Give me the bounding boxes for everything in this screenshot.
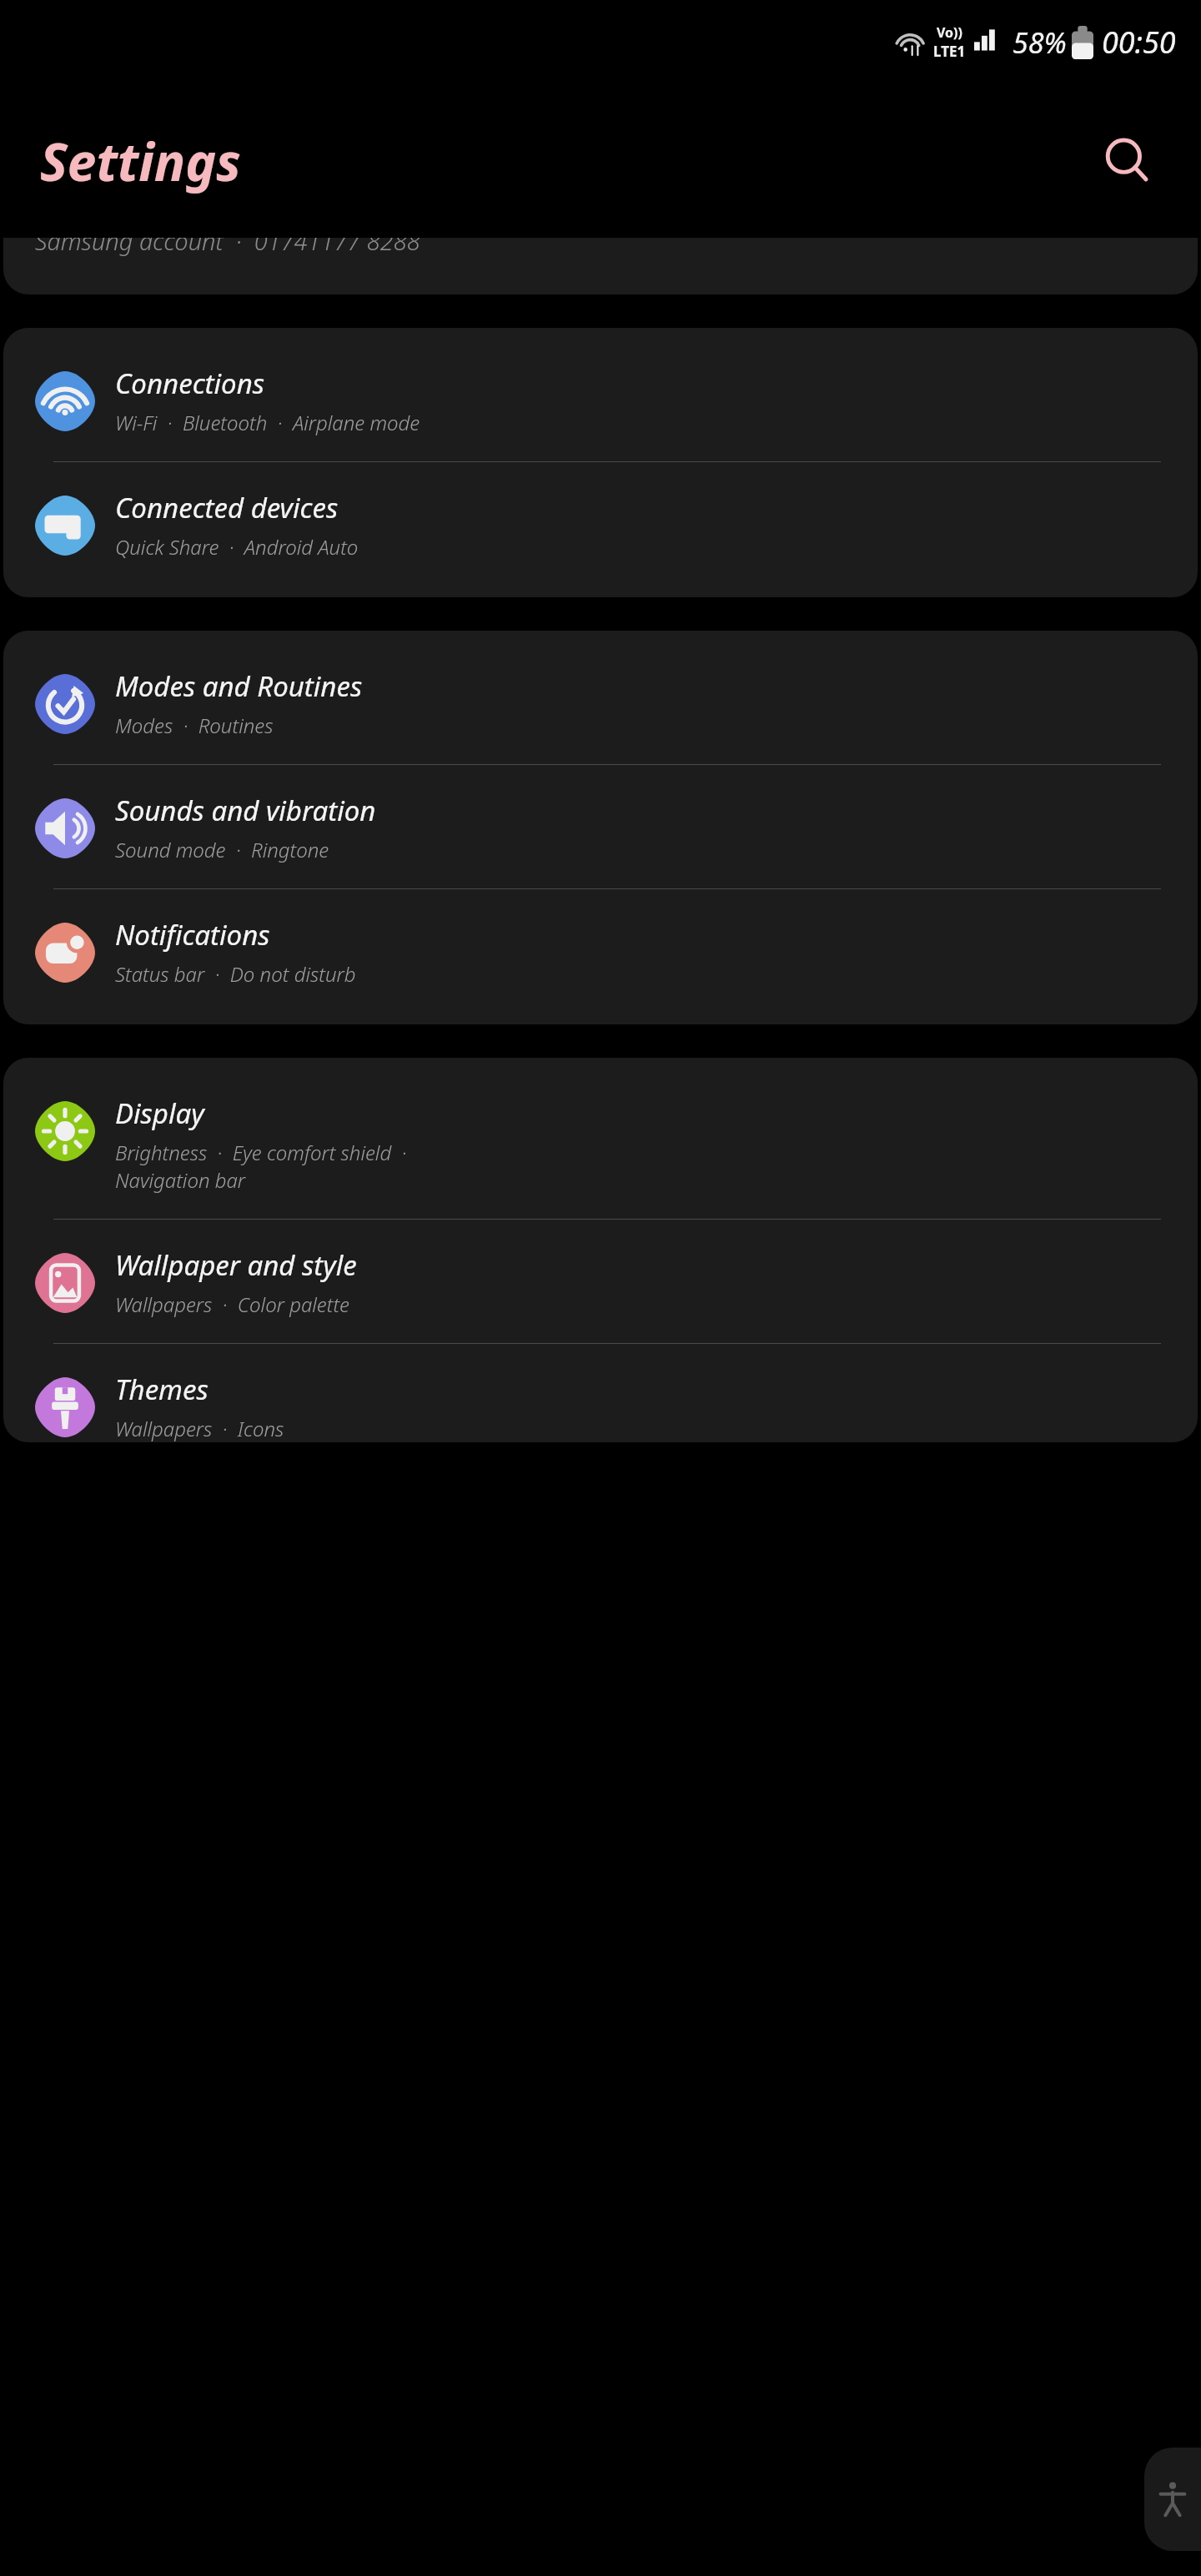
button[interactable]: Display: [3, 1058, 1198, 1219]
staticText: Brightness · Eye comfort shield ·: [115, 1139, 407, 1166]
staticText: Modes · Routines: [115, 712, 274, 739]
button[interactable]: Samsung account · 01741177 8288: [3, 238, 1198, 294]
staticText: Samsung account · 01741177 8288: [35, 238, 420, 257]
staticText: Sounds and vibration: [115, 792, 376, 829]
staticText: LTE1: [933, 42, 966, 61]
staticText: Notifications: [115, 916, 270, 953]
staticText: Wallpapers · Icons: [115, 1415, 284, 1442]
staticText: Settings: [40, 126, 241, 196]
staticText: Themes: [115, 1371, 209, 1408]
button[interactable]: Accessibility: [1144, 2448, 1201, 2551]
button[interactable]: Connections: [3, 328, 1198, 461]
staticText: Wallpapers · Color palette: [115, 1291, 349, 1318]
staticText: Sound mode · Ringtone: [115, 836, 329, 863]
staticText: Display: [115, 1094, 204, 1132]
button[interactable]: Modes and Routines: [3, 631, 1198, 764]
button[interactable]: Search: [1089, 123, 1166, 199]
button[interactable]: Connected devices: [3, 462, 1198, 597]
button[interactable]: Wallpaper and style: [3, 1220, 1198, 1343]
staticText: 58%: [1013, 23, 1067, 62]
staticText: Modes and Routines: [115, 667, 363, 705]
staticText: Connections: [115, 365, 264, 402]
staticText: Wi-Fi · Bluetooth · Airplane mode: [115, 409, 420, 436]
staticText: Quick Share · Android Auto: [115, 533, 359, 561]
button[interactable]: Notifications: [3, 889, 1198, 1024]
staticText: Navigation bar: [115, 1166, 246, 1194]
button[interactable]: Sounds and vibration: [3, 765, 1198, 888]
staticText: 00:50: [1102, 22, 1176, 63]
staticText: Vo)): [937, 23, 962, 42]
staticText: Wallpaper and style: [115, 1246, 357, 1284]
staticText: Connected devices: [115, 489, 339, 526]
staticText: Status bar · Do not disturb: [115, 960, 356, 988]
button[interactable]: Themes: [3, 1344, 1198, 1442]
